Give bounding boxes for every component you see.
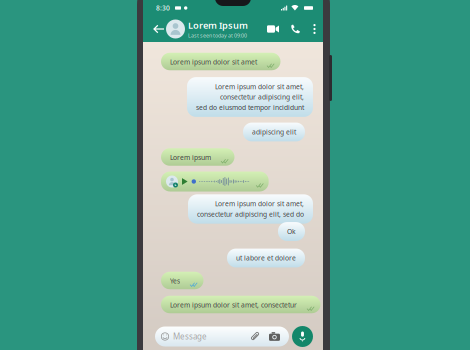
staticText: Lorem ipsum dolor sit amet, bbox=[215, 82, 304, 91]
staticText: adipiscing elit bbox=[252, 128, 296, 136]
button[interactable]: Voice call bbox=[290, 19, 301, 39]
staticText: Yes bbox=[170, 276, 180, 285]
staticText: 8:30 bbox=[156, 4, 170, 12]
staticText: sed do eiusmod tempor incididunt bbox=[196, 103, 304, 112]
staticText: Lorem ipsum dolor sit amet, consectetur bbox=[170, 300, 297, 309]
staticText: ut labore et dolore bbox=[236, 254, 296, 262]
button[interactable]: More options bbox=[313, 19, 316, 38]
button[interactable]: Camera bbox=[269, 332, 280, 341]
staticText: Ok bbox=[287, 227, 296, 236]
button[interactable]: Back bbox=[153, 19, 165, 39]
staticText: Message bbox=[173, 331, 207, 342]
button[interactable]: Attach bbox=[251, 332, 260, 341]
button[interactable]: Video call bbox=[267, 20, 279, 38]
staticText: Lorem Ipsum bbox=[188, 19, 248, 31]
staticText: Last seen today at 09:00 bbox=[188, 32, 247, 39]
staticText: consectetur adipiscing elit, bbox=[220, 93, 304, 101]
staticText: Lorem ipsum bbox=[170, 153, 211, 162]
staticText: consectetur adipiscing elit, sed do bbox=[197, 210, 304, 219]
button[interactable]: Lorem Ipsum bbox=[166, 19, 248, 39]
button[interactable]: Record voice message bbox=[292, 326, 313, 347]
staticText: Lorem ipsum dolor sit amet bbox=[170, 57, 257, 66]
staticText: Lorem ipsum dolor sit amet, bbox=[215, 199, 304, 208]
